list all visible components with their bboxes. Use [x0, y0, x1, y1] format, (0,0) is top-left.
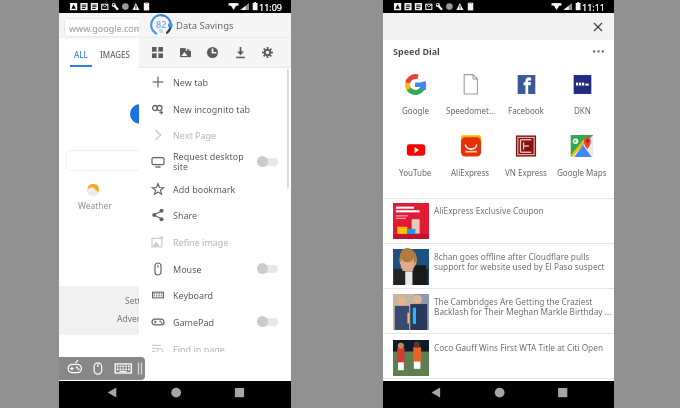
button[interactable]: www.google.com	[64, 18, 199, 37]
button[interactable]: Bookmarks	[144, 38, 170, 67]
button[interactable]: Facebook	[498, 62, 554, 125]
button[interactable]: GamePad	[139, 308, 291, 335]
staticText: New incognito tab	[173, 103, 287, 115]
staticText: Facebook	[508, 105, 544, 116]
button[interactable]: Speed Dial	[393, 45, 440, 57]
button[interactable]: Next Page	[139, 121, 291, 148]
button[interactable]: Add bookmark	[139, 175, 291, 202]
button[interactable]: Downloads	[227, 38, 253, 67]
button[interactable]: Home	[142, 381, 207, 408]
staticText: 82	[156, 18, 167, 30]
button[interactable]: History	[199, 38, 225, 67]
staticText: Google	[402, 105, 429, 116]
button[interactable]: Recent apps	[531, 381, 614, 408]
button[interactable]: ALL	[74, 49, 88, 60]
button[interactable]: More options	[589, 42, 607, 60]
staticText: 11:11	[582, 1, 606, 13]
staticText: Share	[173, 209, 287, 221]
staticText: Google Maps	[557, 167, 607, 178]
staticText: Request desktop site	[173, 150, 257, 173]
button[interactable]: Settings	[254, 38, 280, 67]
button[interactable]: New tab	[139, 68, 291, 95]
button[interactable]: YouTube	[388, 125, 443, 198]
button[interactable]: Refine image	[139, 228, 291, 255]
button[interactable]: Keyboard	[139, 281, 291, 308]
button[interactable]: Advertising	[117, 313, 163, 325]
button[interactable]: Share	[139, 201, 291, 228]
staticText: Find in page	[173, 343, 287, 352]
button[interactable]: Home	[466, 381, 531, 408]
staticText: YouTube	[399, 167, 432, 178]
button[interactable]: VN Express	[498, 125, 554, 198]
button[interactable]: AliExpress Exclusive Coupon	[383, 199, 614, 243]
button[interactable]: Google Maps	[554, 125, 610, 198]
button[interactable]: New incognito tab	[139, 95, 291, 122]
button[interactable]	[66, 150, 196, 171]
staticText: AliExpress Exclusive Coupon	[434, 205, 544, 216]
button[interactable]: The Cambridges Are Getting the Craziest …	[383, 289, 614, 333]
staticText: DKN	[574, 105, 591, 116]
button[interactable]: Back	[59, 381, 142, 408]
button[interactable]: Request desktop site	[139, 148, 291, 175]
button[interactable]: Speedomet...	[443, 62, 498, 125]
staticText: Keyboard	[173, 289, 287, 301]
staticText: Refine image	[173, 236, 287, 248]
staticText: %	[159, 28, 164, 35]
staticText: Mouse	[173, 263, 257, 275]
staticText: Coco Gauff Wins First WTA Title at Citi …	[434, 342, 604, 353]
staticText: AliExpress	[451, 167, 490, 178]
button[interactable]: Close	[589, 18, 607, 36]
staticText: New tab	[173, 76, 287, 88]
button[interactable]: Photos	[172, 38, 198, 67]
button[interactable]: Coco Gauff Wins First WTA Title at Citi …	[383, 334, 614, 378]
staticText: Weather	[78, 200, 112, 212]
button[interactable]: Data savings	[150, 14, 172, 36]
button[interactable]: Google	[388, 62, 443, 125]
staticText: The Cambridges Are Getting the Craziest …	[434, 296, 612, 317]
staticText: 8chan goes offline after Cloudflare pull…	[434, 251, 612, 272]
staticText: Speedomet...	[446, 105, 496, 116]
button[interactable]: Recent apps	[207, 381, 291, 408]
button[interactable]: Back	[383, 381, 466, 408]
button[interactable]: Data Savings	[176, 19, 234, 32]
staticText: GamePad	[173, 316, 257, 328]
button[interactable]: Input devices	[59, 357, 145, 380]
button[interactable]: Find in page	[139, 335, 291, 352]
button[interactable]: IMAGES	[100, 49, 130, 60]
button[interactable]: Settings	[125, 295, 158, 307]
staticText: Add bookmark	[173, 183, 287, 195]
staticText: www.google.com	[69, 22, 143, 34]
button[interactable]: 8chan goes offline after Cloudflare pull…	[383, 244, 614, 288]
staticText: 11:09	[259, 1, 283, 13]
staticText: Next Page	[173, 129, 287, 141]
button[interactable]: DKN	[554, 62, 610, 125]
button[interactable]: AliExpress	[443, 125, 498, 198]
button[interactable]: Mouse	[139, 255, 291, 282]
staticText: VN Express	[505, 167, 547, 178]
